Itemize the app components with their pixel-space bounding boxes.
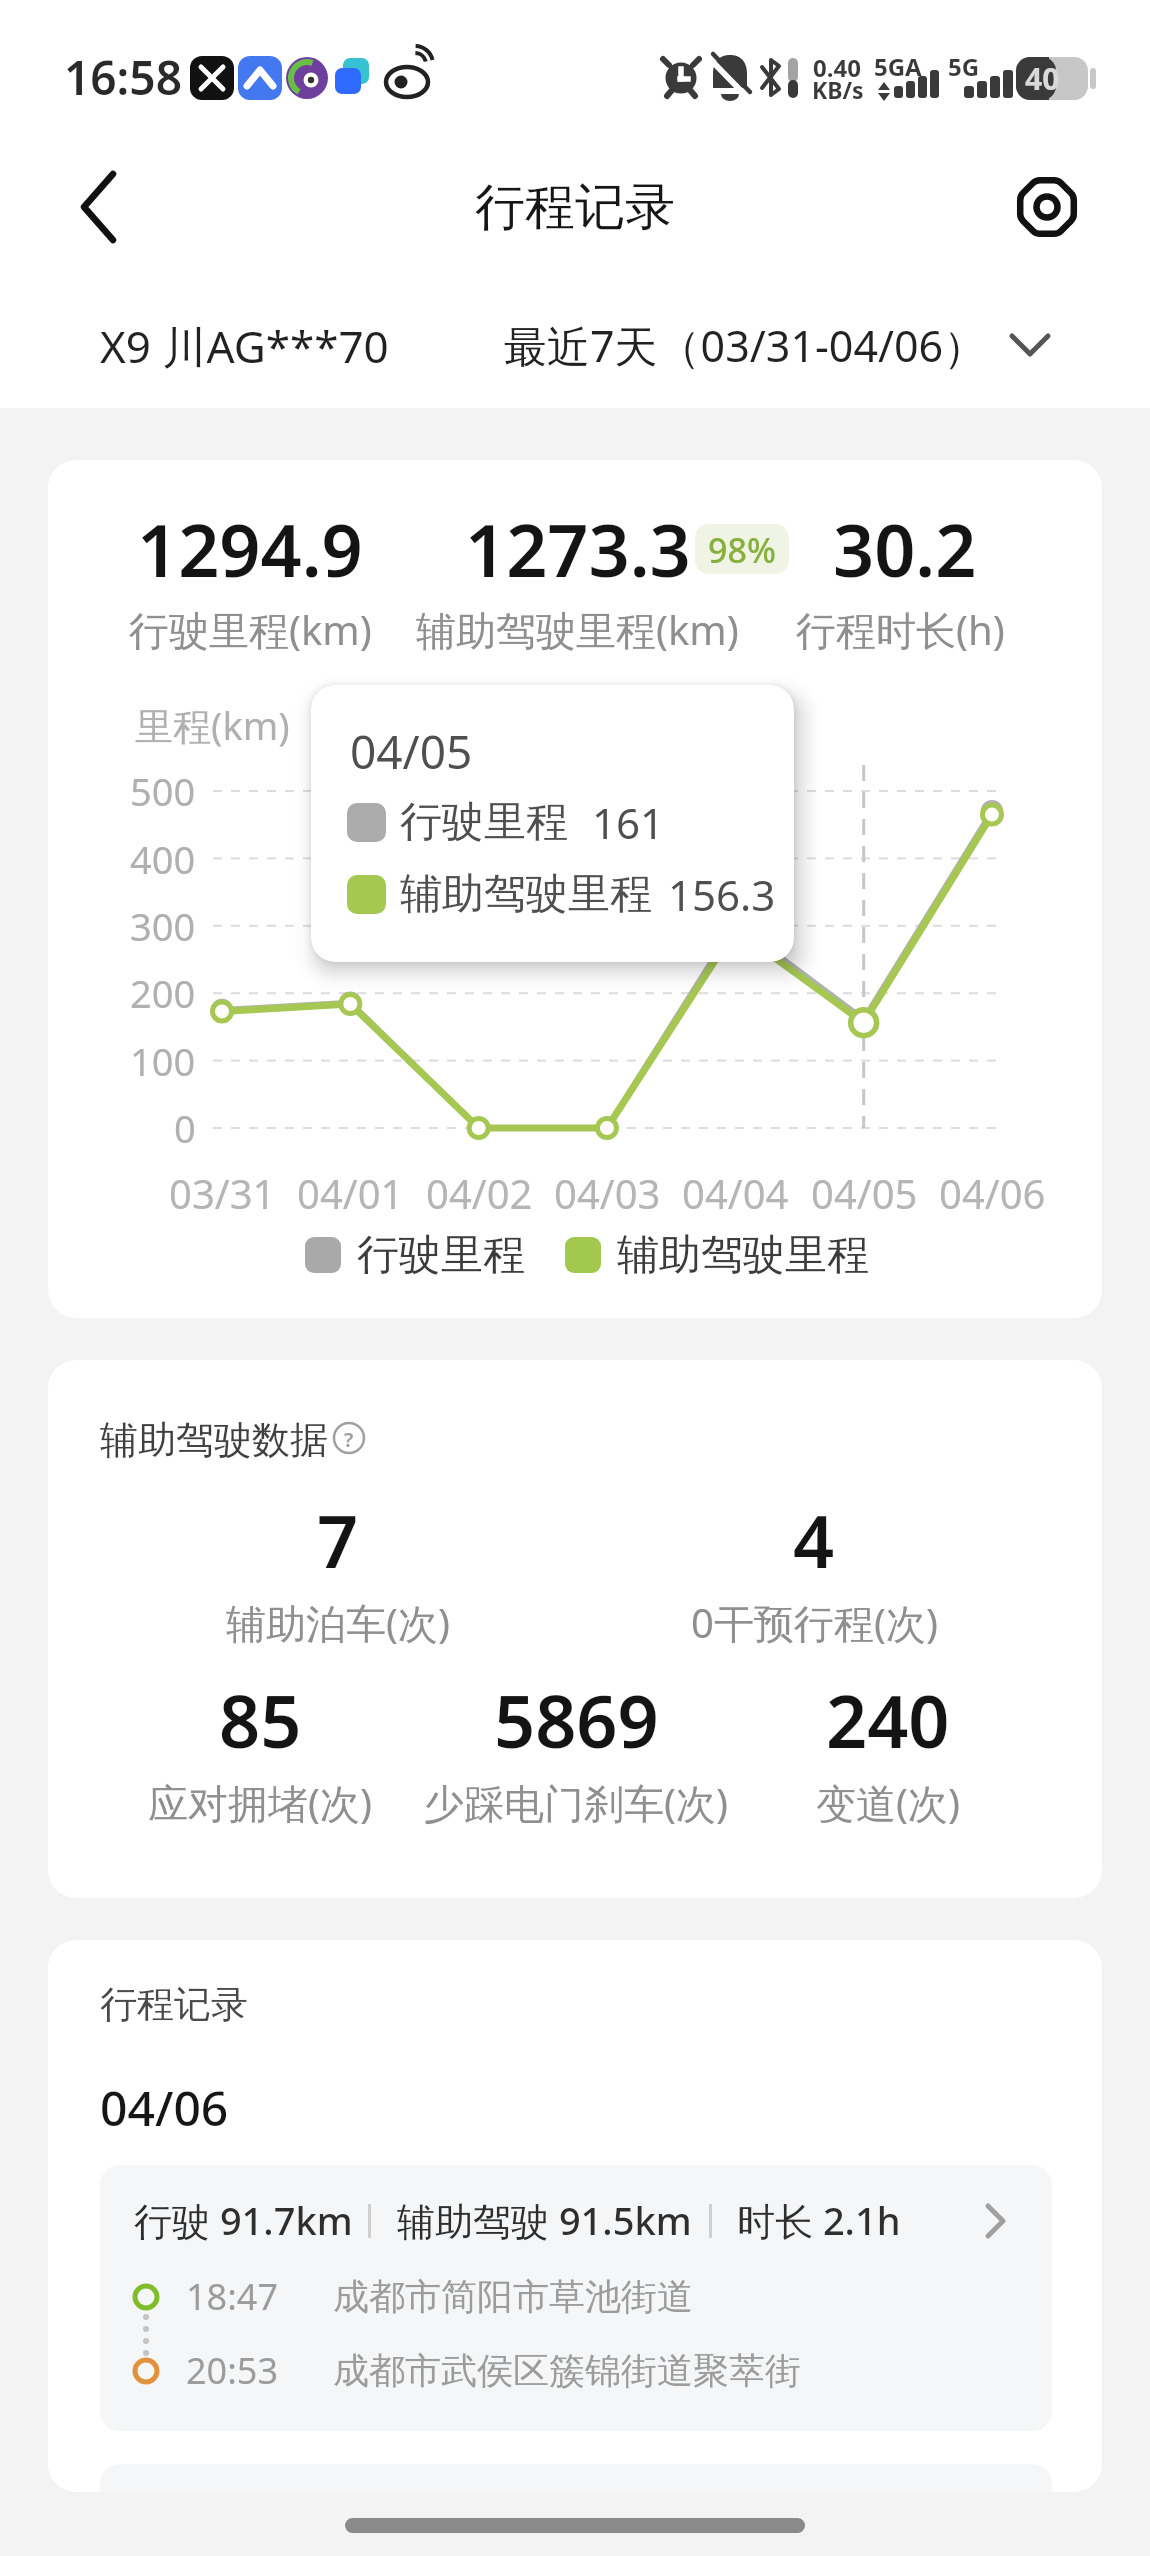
staticText: 行程时长(h) (796, 602, 1005, 657)
staticText: 04/04 (682, 1166, 789, 1220)
staticText: 应对拥堵(次) (148, 1775, 372, 1830)
staticText: 04/06 (939, 1166, 1046, 1220)
staticText: 16:58 (64, 46, 182, 109)
staticText: 行程记录 (100, 1981, 248, 2028)
staticText: 行驶里程 (400, 796, 568, 849)
button[interactable] (1000, 160, 1095, 255)
staticText: 少踩电门刹车(次) (424, 1775, 728, 1830)
staticText: 0干预行程(次) (691, 1595, 938, 1650)
staticText: X9 川AG***70 (100, 316, 389, 376)
staticText: 里程(km) (135, 699, 290, 751)
staticText: 40 (1025, 58, 1060, 99)
staticText: 辅助驾驶 91.5km (397, 2194, 692, 2246)
staticText: 98% (708, 527, 776, 573)
staticText: KB/s (812, 74, 864, 105)
staticText: 时长 2.1h (737, 2194, 901, 2246)
staticText: 辅助驾驶里程 (617, 1229, 869, 1282)
staticText: 04/06 (100, 2075, 229, 2140)
staticText: 行驶 91.7km (134, 2194, 353, 2246)
staticText: 4 (793, 1491, 835, 1589)
staticText: 行驶里程 (357, 1229, 525, 1282)
staticText: 500 (130, 765, 196, 817)
staticText: 成都市武侯区簇锦街道聚萃街 (333, 2348, 801, 2393)
staticText: 04/03 (554, 1166, 661, 1220)
button[interactable] (480, 305, 1070, 390)
staticText: 5869 (494, 1671, 659, 1769)
staticText: 04/05 (350, 720, 473, 783)
staticText: 161 (592, 794, 665, 851)
staticText: 变道(次) (816, 1775, 960, 1830)
staticText: 1294.9 (137, 500, 363, 598)
staticText: 0 (174, 1102, 196, 1154)
staticText: ? (344, 1426, 354, 1453)
button[interactable] (100, 2165, 1052, 2431)
staticText: 5G (948, 50, 980, 83)
staticText: 240 (826, 1671, 950, 1769)
staticText: 156.3 (668, 866, 776, 923)
staticText: 04/01 (297, 1166, 404, 1220)
staticText: 辅助泊车(次) (226, 1595, 450, 1650)
staticText: 最近7天（03/31-04/06） (504, 316, 987, 375)
staticText: 04/02 (426, 1166, 533, 1220)
staticText: 18:47 (186, 2272, 279, 2321)
staticText: 成都市简阳市草池街道 (333, 2274, 693, 2319)
staticText: 行程记录 (475, 176, 675, 239)
button[interactable] (310, 1410, 370, 1470)
staticText: 行驶里程(km) (129, 602, 372, 657)
staticText: 30.2 (833, 500, 977, 598)
staticText: 04/05 (811, 1166, 918, 1220)
staticText: 20:53 (186, 2346, 279, 2395)
staticText: 0.40 (813, 51, 861, 84)
staticText: 辅助驾驶数据 (100, 1416, 328, 1464)
staticText: 400 (130, 833, 196, 885)
staticText: 辅助驾驶里程 (400, 868, 652, 921)
button[interactable] (60, 160, 150, 250)
staticText: 辅助驾驶里程(km) (416, 602, 739, 657)
staticText: 1273.3 (465, 500, 691, 598)
staticText: 03/31 (169, 1166, 276, 1220)
staticText: 5GA (874, 50, 922, 83)
staticText: 7 (317, 1491, 359, 1589)
staticText: 200 (130, 967, 196, 1019)
staticText: 100 (130, 1035, 196, 1087)
staticText: 85 (219, 1671, 302, 1769)
staticText: 300 (130, 900, 196, 952)
